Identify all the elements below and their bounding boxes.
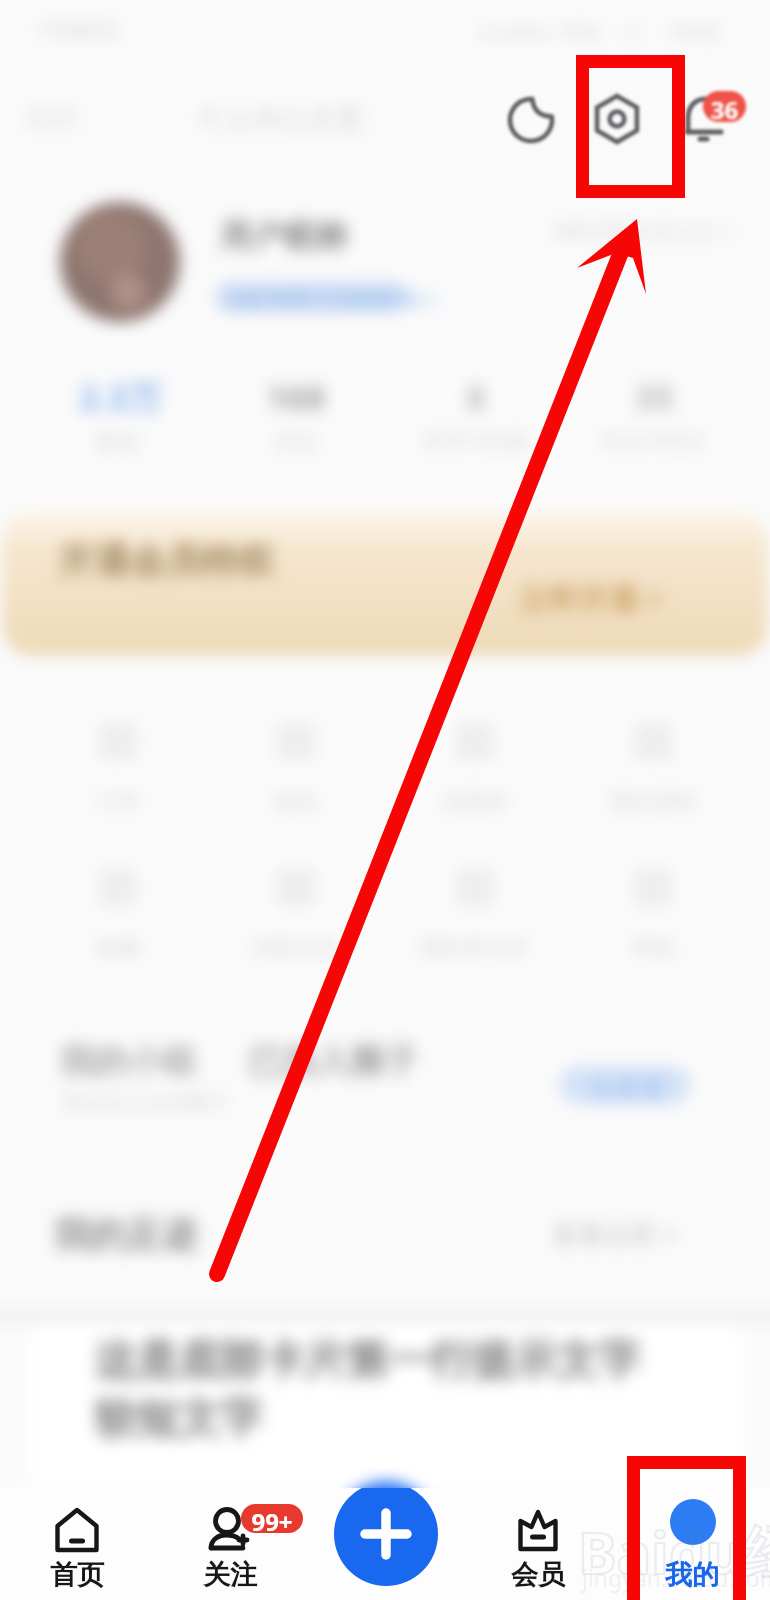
staticText: ▤ [272, 858, 320, 909]
staticText: 立即开通 > [518, 578, 663, 619]
staticText: 小红书号:12345678 > [224, 284, 437, 314]
staticText: Baidu经验 [578, 1512, 770, 1591]
button[interactable]: 99+ [175, 1488, 285, 1600]
staticText: 这是底部卡片第一行提示文字 [95, 1335, 735, 1388]
button[interactable]: 首页 [22, 1488, 132, 1600]
staticText: 2.3万 [72, 374, 168, 420]
staticText: 35 [628, 374, 680, 420]
staticText: 较短文字 [94, 1392, 262, 1445]
staticText: 浏览历史 [228, 934, 364, 962]
staticText: 我的 [665, 1558, 719, 1592]
button[interactable]: Notifications [682, 88, 750, 156]
staticText: 优惠券 [413, 788, 537, 816]
staticText: ▤ [94, 712, 142, 763]
staticText: 分享主页 > [632, 218, 734, 247]
staticText: 查看全部 > [552, 1216, 678, 1252]
staticText: 8 [452, 374, 500, 420]
staticText: 这是底部卡片第一行提示文字 [94, 1334, 734, 1387]
staticText: 已加入圈子 [248, 1040, 418, 1083]
button[interactable]: 会员 [483, 1488, 593, 1600]
staticText: ▤ [272, 712, 320, 763]
staticText: 99+ [241, 1505, 303, 1538]
button[interactable]: Create post [334, 1488, 438, 1586]
button[interactable]: 我的 [637, 1488, 747, 1600]
staticText: 收藏 [50, 934, 186, 962]
staticText: 我的课程 [591, 788, 715, 816]
staticText: ▤ [451, 712, 499, 763]
staticText: ▤ [629, 858, 677, 909]
button[interactable]: Settings [586, 88, 648, 150]
staticText: 开通会员特权 [58, 538, 274, 583]
staticText: jingyan.baidu.com [582, 1562, 770, 1593]
staticText: 去逛逛 [588, 1072, 666, 1105]
staticText: 关注 [203, 1558, 257, 1592]
staticText: 我的足迹 [54, 1212, 198, 1257]
staticText: 获赞与收藏 [399, 428, 551, 454]
staticText: ▤ [94, 858, 142, 909]
staticText: ▤ [629, 712, 677, 763]
staticText: 较短文字 [95, 1393, 263, 1446]
staticText: 36 [703, 93, 746, 124]
staticText: 会员 [511, 1558, 565, 1592]
staticText: 用户昵称 [220, 216, 348, 256]
button[interactable]: Dark mode [500, 90, 562, 152]
staticText: 168 [256, 374, 336, 420]
staticText: ▤ [451, 858, 499, 909]
staticText: 我的小组 [60, 1040, 196, 1083]
staticText: 编辑资料 [554, 218, 638, 244]
staticText: 首页 [50, 1558, 104, 1592]
